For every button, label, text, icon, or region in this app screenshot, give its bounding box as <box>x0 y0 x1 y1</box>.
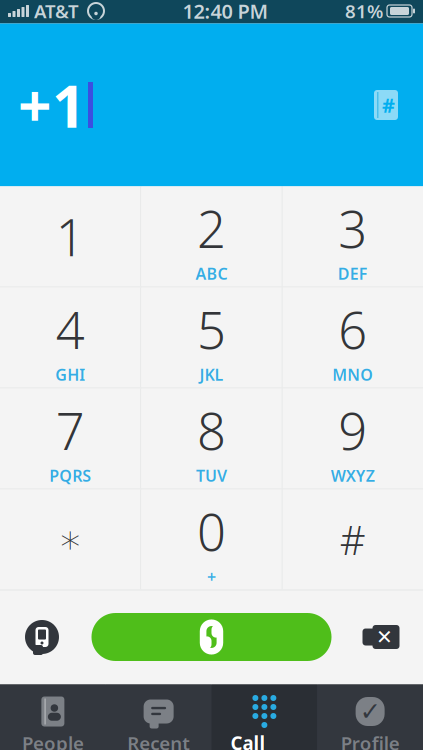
button[interactable]: 5 <box>141 287 282 387</box>
button[interactable]: ∗ <box>0 489 140 589</box>
staticText: 8 <box>197 397 226 464</box>
staticText: +1 <box>18 66 86 144</box>
staticText: TUV <box>196 465 227 486</box>
button[interactable]: Recent <box>106 684 212 750</box>
staticText: DEF <box>338 263 368 284</box>
button[interactable]: Call <box>91 613 331 661</box>
button[interactable]: 4 <box>0 287 140 387</box>
button[interactable]: 9 <box>283 388 423 488</box>
button[interactable]: 2 <box>141 186 282 286</box>
staticText: 2 <box>197 195 226 262</box>
staticText: Recent <box>127 730 190 750</box>
staticText: 5 <box>197 296 226 363</box>
button[interactable]: 1 <box>0 186 140 286</box>
staticText: AT&T <box>34 0 79 23</box>
button[interactable]: 6 <box>283 287 423 387</box>
staticText: PQRS <box>49 465 91 486</box>
button[interactable]: 0 <box>141 489 282 589</box>
button[interactable]: ✓ <box>317 684 423 750</box>
staticText: ✕ <box>376 626 393 648</box>
staticText: Profile <box>341 730 400 750</box>
staticText: People <box>22 730 84 750</box>
staticText: MNO <box>332 364 373 385</box>
staticText: # <box>340 513 366 566</box>
button[interactable]: Call Phones <box>211 684 317 750</box>
button[interactable]: Send message <box>12 609 72 665</box>
staticText: 4 <box>56 296 85 363</box>
staticText: # <box>382 92 395 118</box>
staticText: GHI <box>55 364 85 385</box>
staticText: 9 <box>338 397 367 464</box>
staticText: Call Phones <box>230 730 298 750</box>
staticText: 7 <box>56 397 85 464</box>
staticText: ✓ <box>360 697 381 726</box>
staticText: + <box>207 566 216 587</box>
button[interactable]: People <box>0 684 106 750</box>
staticText: 1 <box>56 203 85 270</box>
button[interactable]: 7 <box>0 388 140 488</box>
staticText: ∗ <box>58 517 83 562</box>
button[interactable]: # <box>283 489 423 589</box>
staticText: WXYZ <box>331 465 375 486</box>
staticText: 3 <box>338 195 367 262</box>
button[interactable]: Delete <box>351 616 411 658</box>
staticText: 6 <box>338 296 367 363</box>
staticText: 12:40 PM <box>182 0 268 24</box>
button[interactable]: Contacts <box>363 79 409 131</box>
button[interactable]: 3 <box>283 186 423 286</box>
staticText: ABC <box>195 263 227 284</box>
button[interactable]: 8 <box>141 388 282 488</box>
staticText: JKL <box>199 364 223 385</box>
staticText: 81% <box>345 0 383 23</box>
staticText: 0 <box>197 498 226 565</box>
